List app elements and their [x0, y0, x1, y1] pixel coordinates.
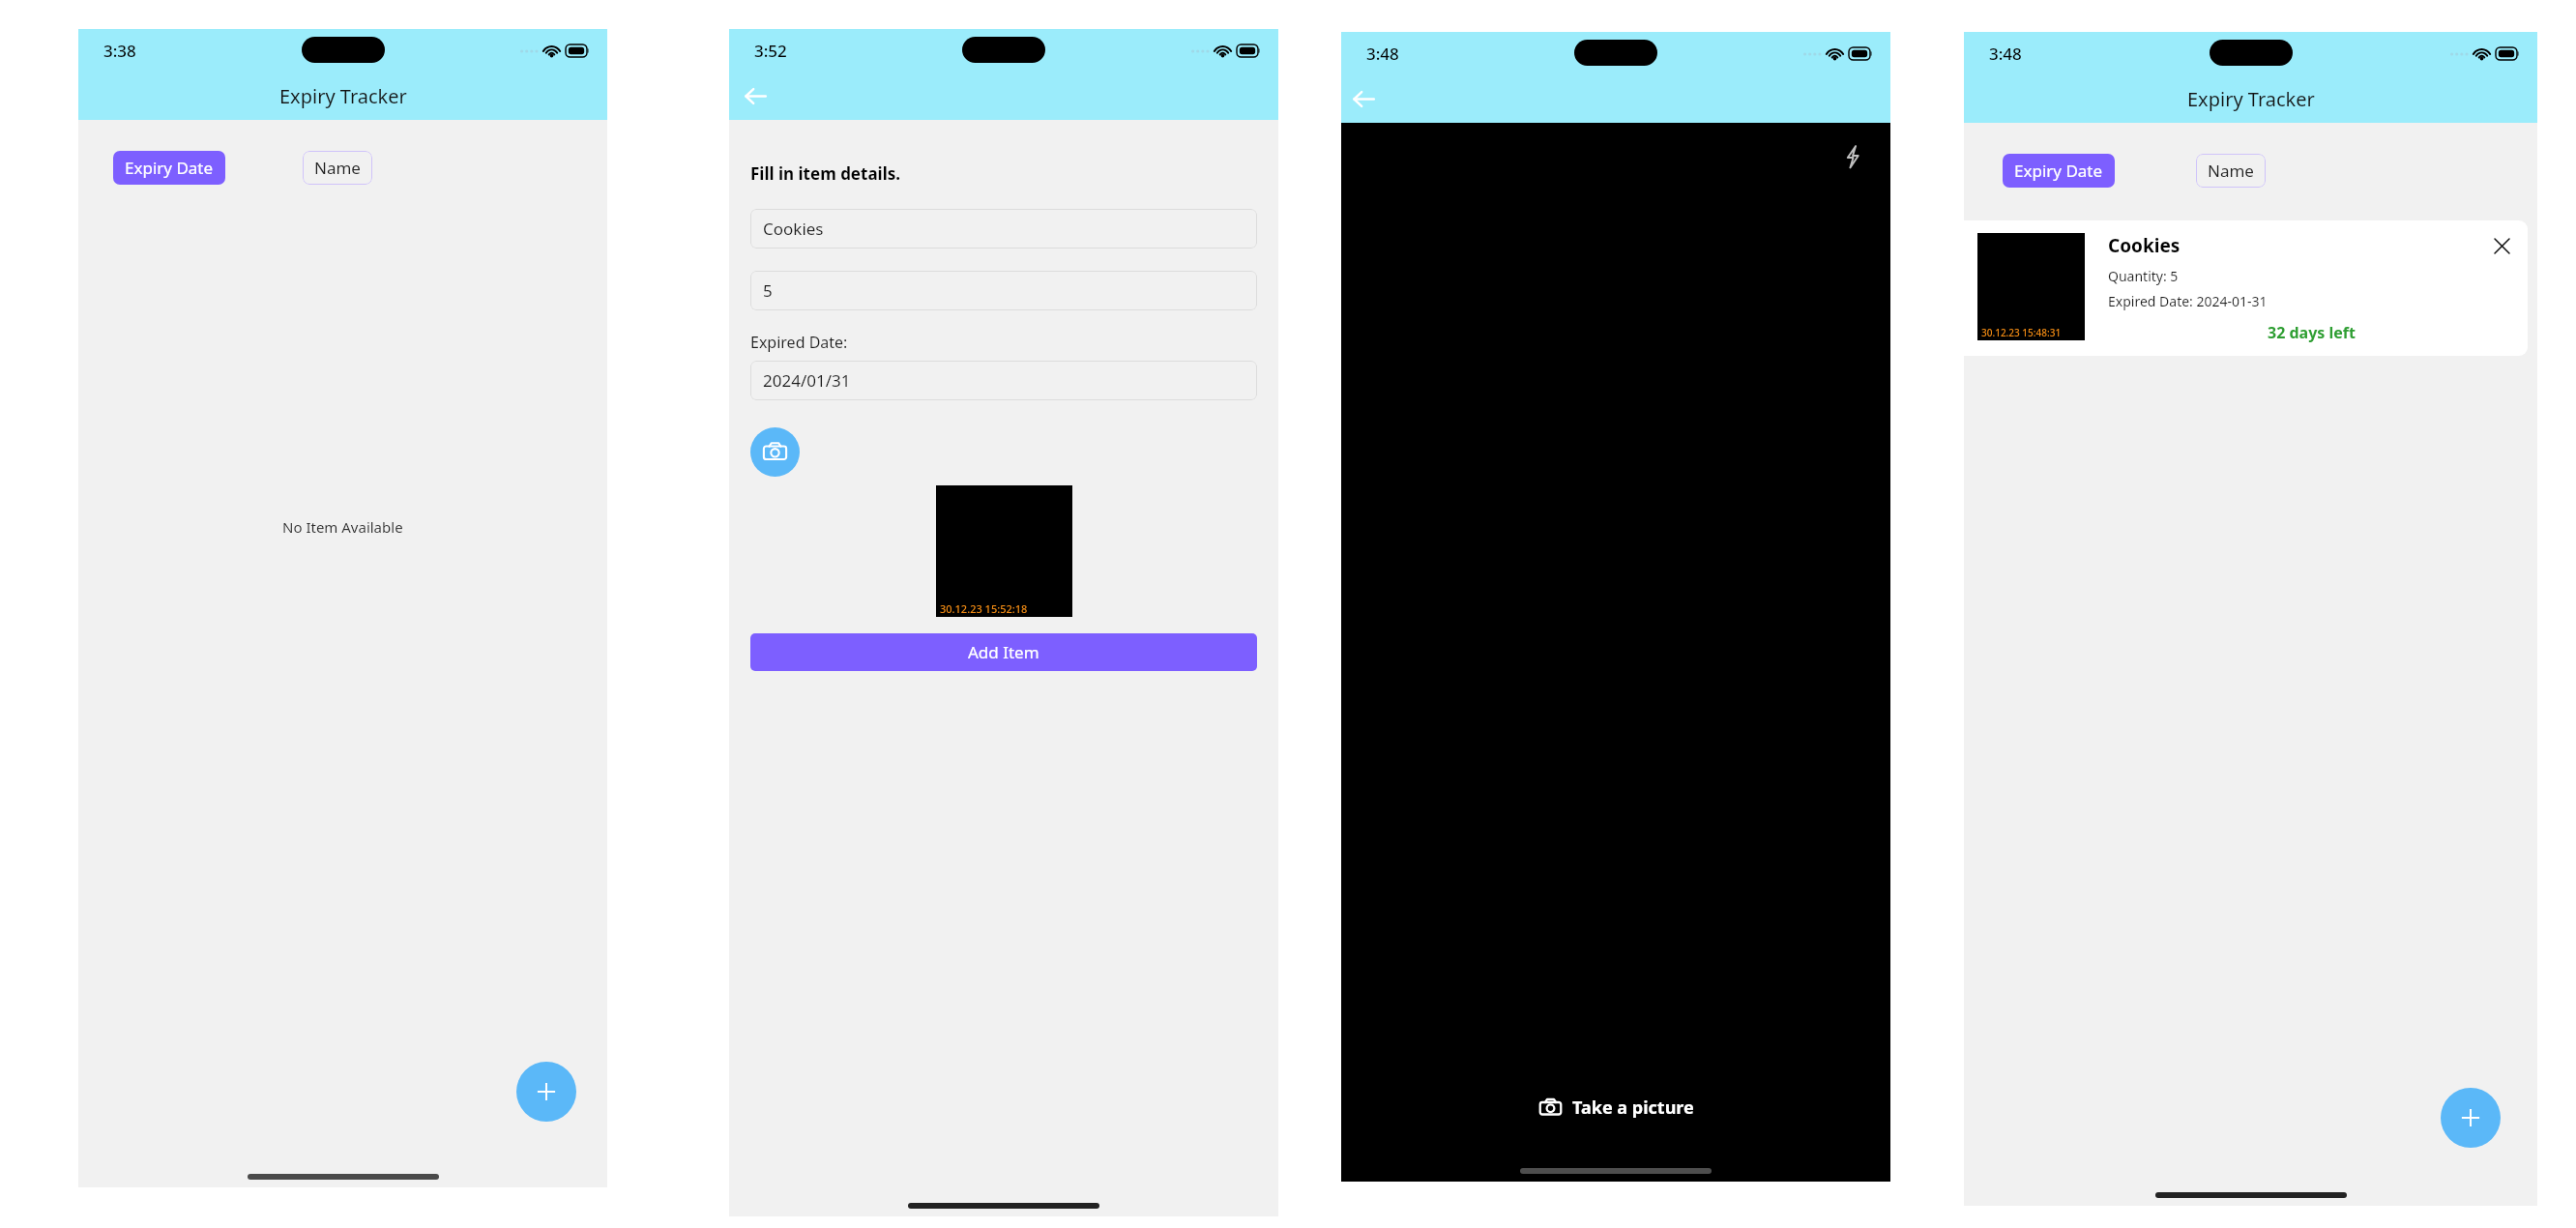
staticText: Add Item	[968, 641, 1039, 663]
staticText: 2024/01/31	[763, 369, 851, 392]
button[interactable]: 5	[750, 271, 1257, 310]
button[interactable]: Remove item	[2489, 233, 2514, 258]
staticText: 32 days left	[2268, 322, 2356, 343]
staticText: Quantity: 5	[2108, 267, 2179, 285]
staticText: Expiry Tracker	[279, 83, 407, 109]
button[interactable]: 30.12.23 15:48:31	[1964, 220, 2528, 356]
staticText: 3:48	[1989, 43, 2022, 65]
button[interactable]: Flash	[1836, 140, 1869, 173]
button[interactable]: Back	[1343, 78, 1384, 119]
button[interactable]: Expiry Date	[2003, 154, 2115, 188]
staticText: Expiry Date	[2014, 160, 2103, 182]
button[interactable]: Cookies	[750, 209, 1257, 249]
staticText: Cookies	[763, 218, 824, 240]
staticText: 3:38	[103, 40, 136, 62]
button[interactable]: Add item	[516, 1062, 576, 1122]
button[interactable]: Name	[303, 151, 372, 185]
staticText: 3:48	[1366, 43, 1399, 65]
staticText: Expired Date:	[750, 332, 848, 353]
button[interactable]: Take photo	[750, 427, 800, 477]
staticText: Expired Date: 2024-01-31	[2108, 292, 2268, 310]
staticText: Name	[2208, 160, 2254, 182]
staticText: Expiry Date	[125, 157, 214, 179]
button[interactable]: Add item	[2441, 1088, 2501, 1148]
button[interactable]: Name	[2196, 154, 2266, 188]
staticText: Expiry Tracker	[2187, 86, 2315, 112]
staticText: Take a picture	[1572, 1096, 1694, 1120]
staticText: Fill in item details.	[750, 162, 901, 185]
button[interactable]: Take a picture	[1529, 1090, 1704, 1126]
button[interactable]: Add Item	[750, 633, 1257, 671]
button[interactable]: Expiry Date	[113, 151, 225, 185]
button[interactable]: Back	[735, 75, 776, 116]
staticText: Name	[314, 157, 361, 179]
staticText: 5	[763, 279, 773, 302]
staticText: 3:52	[754, 40, 787, 62]
staticText: Cookies	[2108, 233, 2181, 258]
staticText: 30.12.23 15:48:31	[1981, 326, 2062, 339]
staticText: No Item Available	[282, 517, 403, 537]
staticText: 30.12.23 15:52:18	[940, 601, 1028, 616]
button[interactable]: 2024/01/31	[750, 361, 1257, 400]
